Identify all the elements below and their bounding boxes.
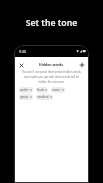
staticText: 9:30 [19, 49, 26, 54]
button[interactable]: unedited [36, 94, 53, 100]
staticText: gossip [20, 95, 29, 99]
staticText: Set the tone [0, 17, 103, 29]
button[interactable]: spoiler [19, 87, 33, 93]
staticText: unedited [37, 95, 49, 99]
button[interactable]: Add [78, 61, 86, 69]
staticText: finale [37, 88, 44, 92]
button[interactable]: Close [17, 61, 25, 69]
staticText: rumor [52, 88, 61, 92]
button[interactable]: gossip [19, 94, 33, 100]
button[interactable]: rumor [51, 87, 65, 93]
button[interactable]: finale [36, 87, 48, 93]
staticText: spoiler [20, 88, 29, 92]
staticText: Hidden words [39, 62, 64, 67]
staticText: You won't see posts that contain hidden … [14, 70, 89, 84]
